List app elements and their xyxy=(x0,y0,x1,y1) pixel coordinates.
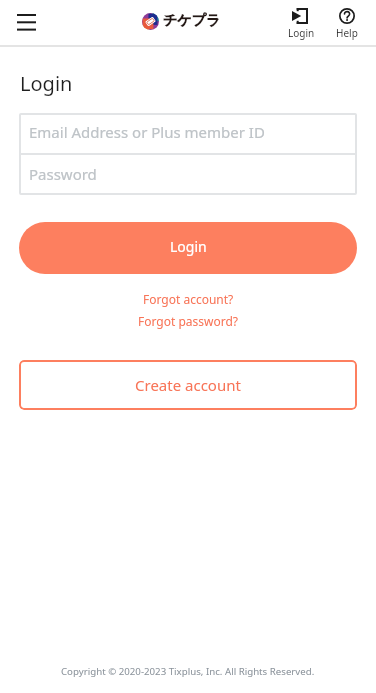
staticText: Login xyxy=(170,237,207,256)
staticText: Create account xyxy=(135,375,241,395)
staticText: Help xyxy=(336,26,358,40)
staticText: Forgot password? xyxy=(138,313,239,329)
button[interactable]: Password xyxy=(19,155,357,195)
button[interactable]: Login xyxy=(285,5,318,40)
button[interactable]: チケプラ xyxy=(142,12,221,30)
staticText: Copyright © 2020-2023 Tixplus, Inc. All … xyxy=(61,665,315,678)
staticText: Password xyxy=(29,164,97,184)
staticText: Forgot account? xyxy=(143,291,234,307)
staticText: Email Address or Plus member ID xyxy=(29,122,265,142)
button[interactable]: Email Address or Plus member ID xyxy=(19,113,357,153)
button[interactable]: Help xyxy=(333,5,361,40)
button[interactable]: Forgot account? xyxy=(143,291,234,307)
button[interactable]: Create account xyxy=(19,360,357,410)
staticText: Login xyxy=(288,26,315,40)
button[interactable]: Open navigation menu xyxy=(10,7,42,37)
staticText: チケプラ xyxy=(163,12,221,30)
button[interactable]: Forgot password? xyxy=(138,313,239,329)
staticText: Login xyxy=(20,70,73,97)
button[interactable]: Login xyxy=(19,222,357,274)
